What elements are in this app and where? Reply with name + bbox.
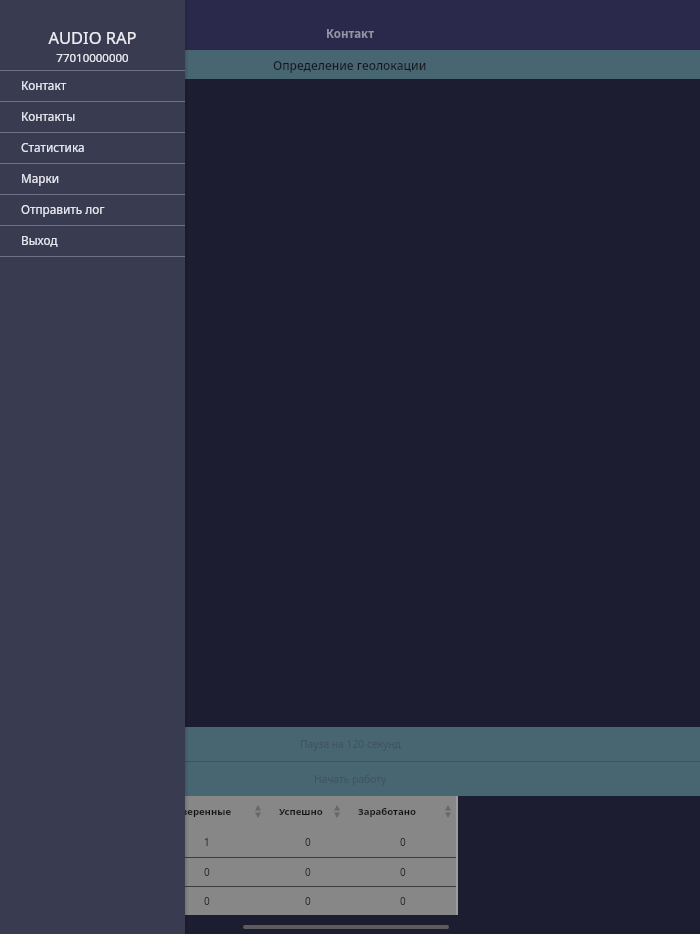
staticText: 0 bbox=[305, 835, 311, 849]
button[interactable]: Успешно bbox=[268, 796, 347, 827]
staticText: 0 bbox=[400, 835, 406, 849]
staticText: Заработано bbox=[358, 805, 416, 818]
button[interactable]: Переверенные bbox=[185, 796, 268, 827]
staticText: 0 bbox=[204, 894, 210, 908]
button[interactable]: 0 bbox=[185, 858, 458, 886]
other: Sort bbox=[255, 805, 261, 818]
staticText: 0 bbox=[305, 865, 311, 879]
button[interactable]: Статистика bbox=[0, 133, 185, 164]
staticText: AUDIO RAP bbox=[0, 26, 185, 48]
button[interactable]: Выход bbox=[0, 226, 185, 257]
button[interactable]: Марки bbox=[0, 164, 185, 195]
button[interactable]: Контакт bbox=[0, 71, 185, 102]
button[interactable]: 0 bbox=[185, 887, 458, 915]
staticText: Статистика bbox=[21, 139, 85, 155]
other: Sort bbox=[445, 805, 451, 818]
button[interactable]: 1 bbox=[185, 827, 458, 857]
button[interactable]: Пауза на 120 секунд bbox=[0, 727, 700, 761]
staticText: 0 bbox=[400, 865, 406, 879]
staticText: 1 bbox=[204, 835, 210, 849]
staticText: Переверенные bbox=[185, 805, 232, 818]
staticText: Определение геолокации bbox=[273, 57, 427, 73]
button[interactable]: Отправить лог bbox=[0, 195, 185, 226]
staticText: Успешно bbox=[279, 805, 323, 818]
staticText: Пауза на 120 секунд bbox=[300, 737, 401, 751]
staticText: 0 bbox=[400, 894, 406, 908]
button[interactable]: Контакты bbox=[0, 102, 185, 133]
staticText: 0 bbox=[204, 865, 210, 879]
staticText: 0 bbox=[305, 894, 311, 908]
staticText: Контакт bbox=[21, 77, 67, 93]
staticText: Марки bbox=[21, 170, 60, 186]
staticText: 77010000000 bbox=[0, 50, 185, 66]
staticText: Выход bbox=[21, 232, 58, 248]
staticText: Начать работу bbox=[314, 772, 387, 786]
button[interactable]: Начать работу bbox=[0, 762, 700, 796]
button[interactable]: Заработано bbox=[347, 796, 458, 827]
staticText: Отправить лог bbox=[21, 201, 105, 217]
button[interactable]: Определение геолокации bbox=[0, 50, 700, 79]
staticText: Контакт bbox=[326, 26, 374, 42]
other: Sort bbox=[334, 805, 340, 818]
staticText: Контакты bbox=[21, 108, 76, 124]
